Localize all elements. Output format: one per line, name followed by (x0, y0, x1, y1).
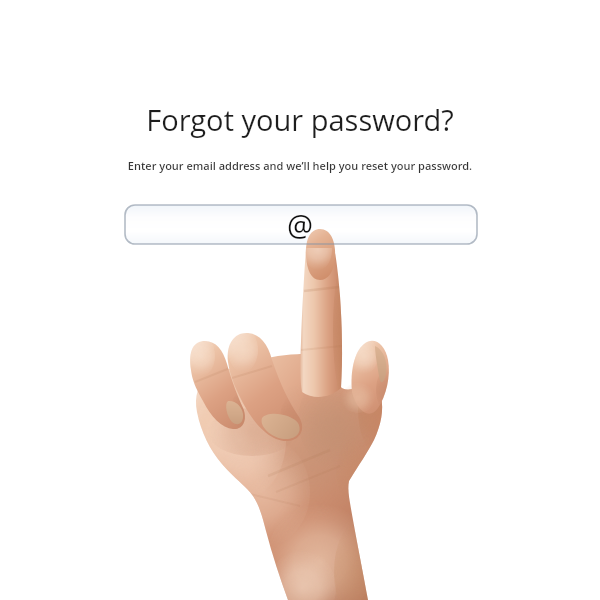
staticText: Forgot your password? (0, 100, 600, 139)
button[interactable] (0, 0, 600, 600)
staticText: @ (0, 205, 600, 244)
staticText: Enter your email address and we’ll help … (0, 158, 600, 173)
